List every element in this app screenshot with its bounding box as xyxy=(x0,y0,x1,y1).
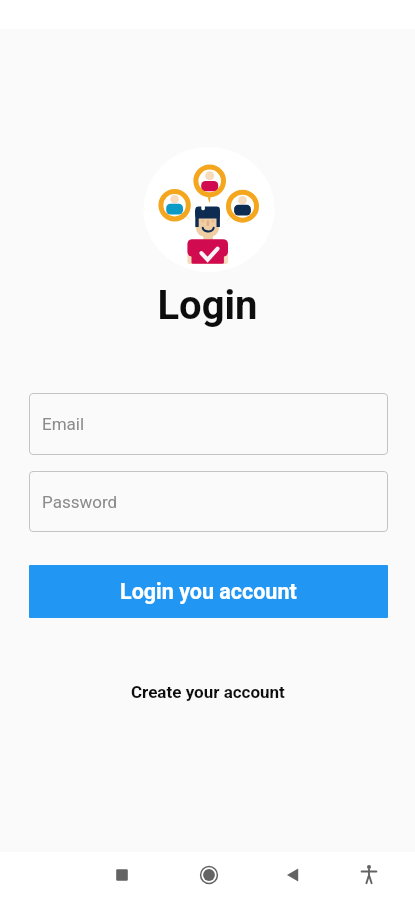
staticText: Login you account xyxy=(120,579,297,604)
staticText: Password xyxy=(42,492,118,512)
button[interactable]: Back xyxy=(273,855,313,895)
button[interactable]: Password xyxy=(29,471,388,532)
staticText: Login xyxy=(0,282,415,329)
button[interactable]: Home xyxy=(189,855,229,895)
button[interactable]: Login you account xyxy=(29,565,388,618)
staticText: Email xyxy=(42,414,85,434)
button[interactable]: Recents xyxy=(102,855,142,895)
staticText: Create your account xyxy=(131,682,285,702)
button[interactable]: Accessibility xyxy=(349,855,389,895)
button[interactable]: Email xyxy=(29,393,388,455)
button[interactable]: Create your account xyxy=(115,674,301,710)
